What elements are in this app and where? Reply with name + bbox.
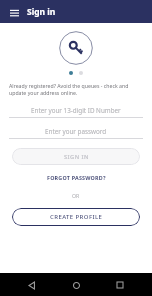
button[interactable]: Open navigation menu: [6, 4, 22, 20]
button[interactable]: Back: [24, 277, 40, 293]
button[interactable]: Enter your password: [9, 125, 143, 139]
button[interactable]: Enter your 13-digit ID Number: [9, 104, 143, 118]
button[interactable]: SIGN IN: [12, 148, 140, 165]
staticText: OR: [72, 192, 80, 199]
staticText: Sign in: [27, 6, 56, 18]
button[interactable]: Home: [68, 277, 84, 293]
button[interactable]: Page 2: [79, 71, 83, 75]
button[interactable]: Page 1: [69, 71, 73, 75]
staticText: CREATE PROFILE: [50, 213, 103, 221]
staticText: SIGN IN: [64, 153, 89, 161]
staticText: Enter your 13-digit ID Number: [31, 106, 121, 115]
staticText: Already registered? Avoid the queues - c…: [9, 82, 143, 96]
button[interactable]: FORGOT PASSWORD?: [45, 172, 108, 183]
button[interactable]: CREATE PROFILE: [12, 208, 140, 226]
button[interactable]: Recent apps: [112, 277, 128, 293]
staticText: Enter your password: [45, 127, 107, 136]
